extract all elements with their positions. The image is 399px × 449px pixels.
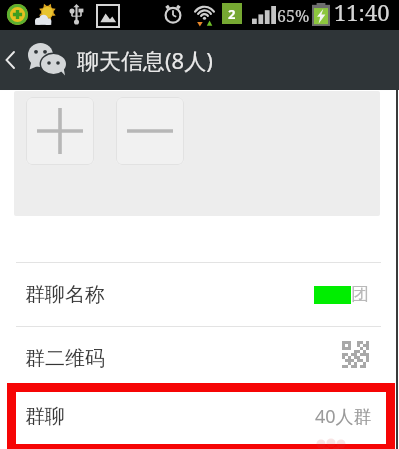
- button[interactable]: 群聊: [16, 392, 386, 440]
- staticText: 群聊: [25, 404, 65, 429]
- staticText: 团: [351, 283, 369, 306]
- button[interactable]: Add member: [26, 97, 94, 165]
- button[interactable]: 群聊名称: [0, 263, 399, 326]
- staticText: 2: [228, 5, 236, 23]
- button[interactable]: 群二维码: [0, 327, 399, 390]
- staticText: 群二维码: [25, 346, 105, 371]
- button[interactable]: Back: [0, 30, 26, 90]
- staticText: 65%: [277, 5, 310, 27]
- button[interactable]: Remove member: [116, 97, 184, 165]
- staticText: 群聊名称: [25, 282, 105, 307]
- staticText: 40人群: [315, 404, 372, 429]
- staticText: 聊天信息(8人): [77, 45, 213, 75]
- staticText: 11:40: [334, 0, 390, 27]
